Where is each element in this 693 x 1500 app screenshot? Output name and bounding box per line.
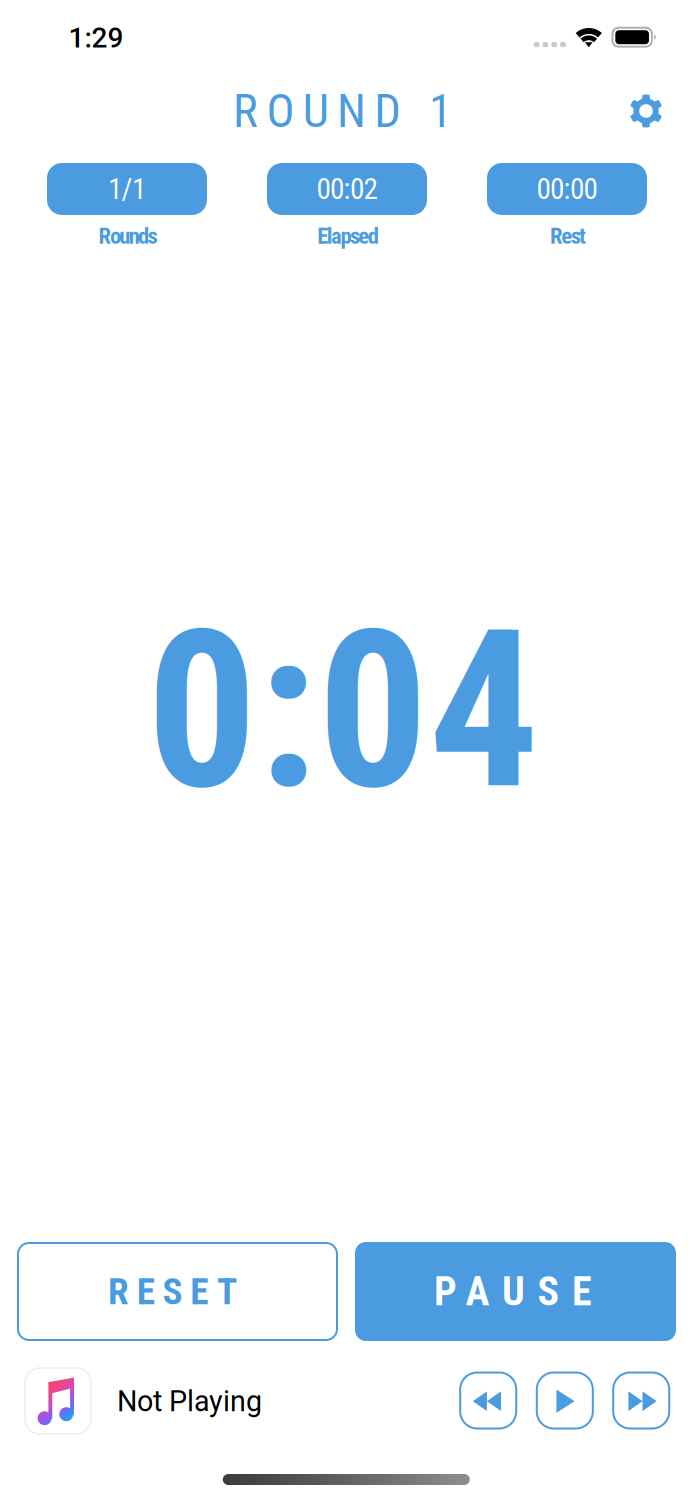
- staticText: 0:04: [146, 583, 539, 839]
- staticText: RESET: [108, 1270, 237, 1313]
- button[interactable]: Next track: [612, 1371, 670, 1429]
- staticText: PAUSE: [434, 1268, 592, 1315]
- staticText: Rounds: [98, 223, 157, 249]
- staticText: ROUND 1: [233, 84, 452, 138]
- staticText: 1:29: [68, 22, 123, 54]
- staticText: Rest: [550, 223, 586, 249]
- button[interactable]: Settings: [616, 81, 676, 141]
- staticText: Elapsed: [317, 223, 379, 249]
- staticText: 1/1: [108, 172, 146, 206]
- staticText: Not Playing: [117, 1385, 262, 1418]
- button[interactable]: PAUSE: [355, 1242, 676, 1341]
- button[interactable]: Play: [536, 1371, 594, 1429]
- staticText: 00:00: [536, 172, 597, 206]
- staticText: 00:02: [316, 172, 377, 206]
- button[interactable]: RESET: [17, 1242, 338, 1341]
- button[interactable]: Previous track: [459, 1371, 517, 1429]
